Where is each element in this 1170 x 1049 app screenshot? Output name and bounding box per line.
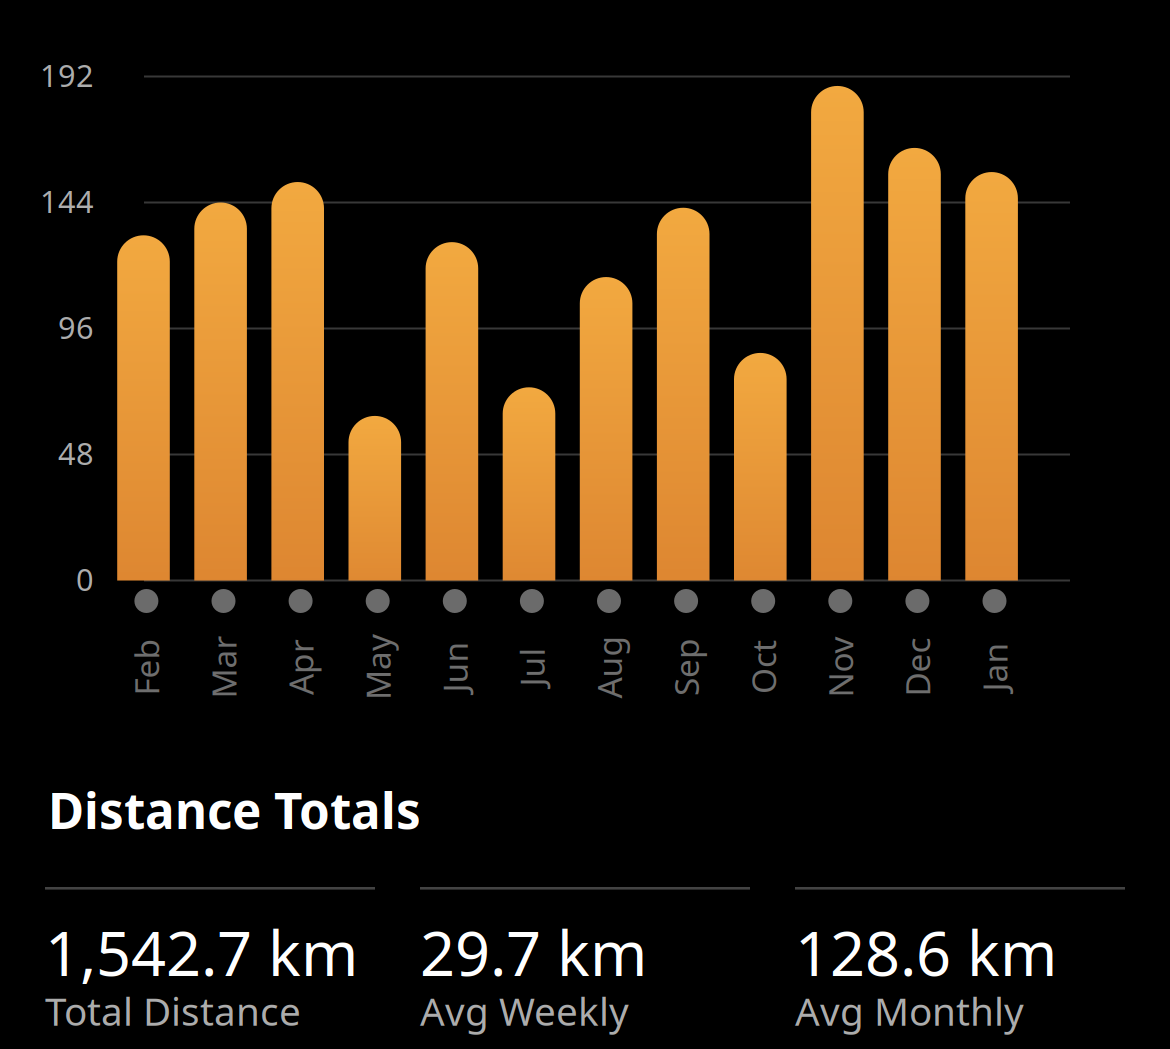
button[interactable]: Feb	[116, 589, 176, 714]
button[interactable]: Sep	[656, 589, 716, 714]
staticText: Avg Monthly	[795, 985, 1024, 1036]
button[interactable]: Oct	[733, 589, 793, 714]
button[interactable]: Aug	[579, 589, 639, 714]
staticText: Avg Weekly	[420, 985, 629, 1036]
button[interactable]: Jan	[964, 589, 1024, 714]
staticText: 48	[58, 433, 94, 473]
staticText: 1,542.7 km	[45, 912, 358, 993]
staticText: Jul	[512, 645, 551, 689]
staticText: Mar	[192, 645, 255, 689]
staticText: Oct	[736, 645, 790, 689]
staticText: 29.7 km	[420, 912, 647, 993]
staticText: Feb	[118, 645, 175, 689]
staticText: Sep	[657, 645, 715, 689]
staticText: Jan	[970, 645, 1019, 689]
button[interactable]: May	[348, 589, 408, 714]
staticText: 0	[76, 559, 94, 599]
staticText: 144	[40, 181, 94, 221]
button[interactable]: Mar	[193, 589, 253, 714]
staticText: 192	[40, 55, 94, 95]
staticText: Total Distance	[45, 985, 301, 1036]
button[interactable]: Jul	[502, 589, 562, 714]
staticText: Nov	[810, 645, 871, 689]
staticText: Dec	[888, 645, 947, 689]
staticText: Apr	[273, 645, 329, 689]
staticText: May	[345, 645, 411, 689]
button[interactable]: Apr	[271, 589, 331, 714]
button[interactable]: Jun	[425, 589, 485, 714]
staticText: Distance Totals	[48, 777, 421, 842]
staticText: 96	[58, 307, 94, 347]
staticText: Jun	[429, 645, 480, 689]
button[interactable]: Dec	[887, 589, 947, 714]
staticText: 128.6 km	[795, 912, 1057, 993]
button[interactable]: Nov	[810, 589, 870, 714]
staticText: Aug	[577, 645, 640, 689]
